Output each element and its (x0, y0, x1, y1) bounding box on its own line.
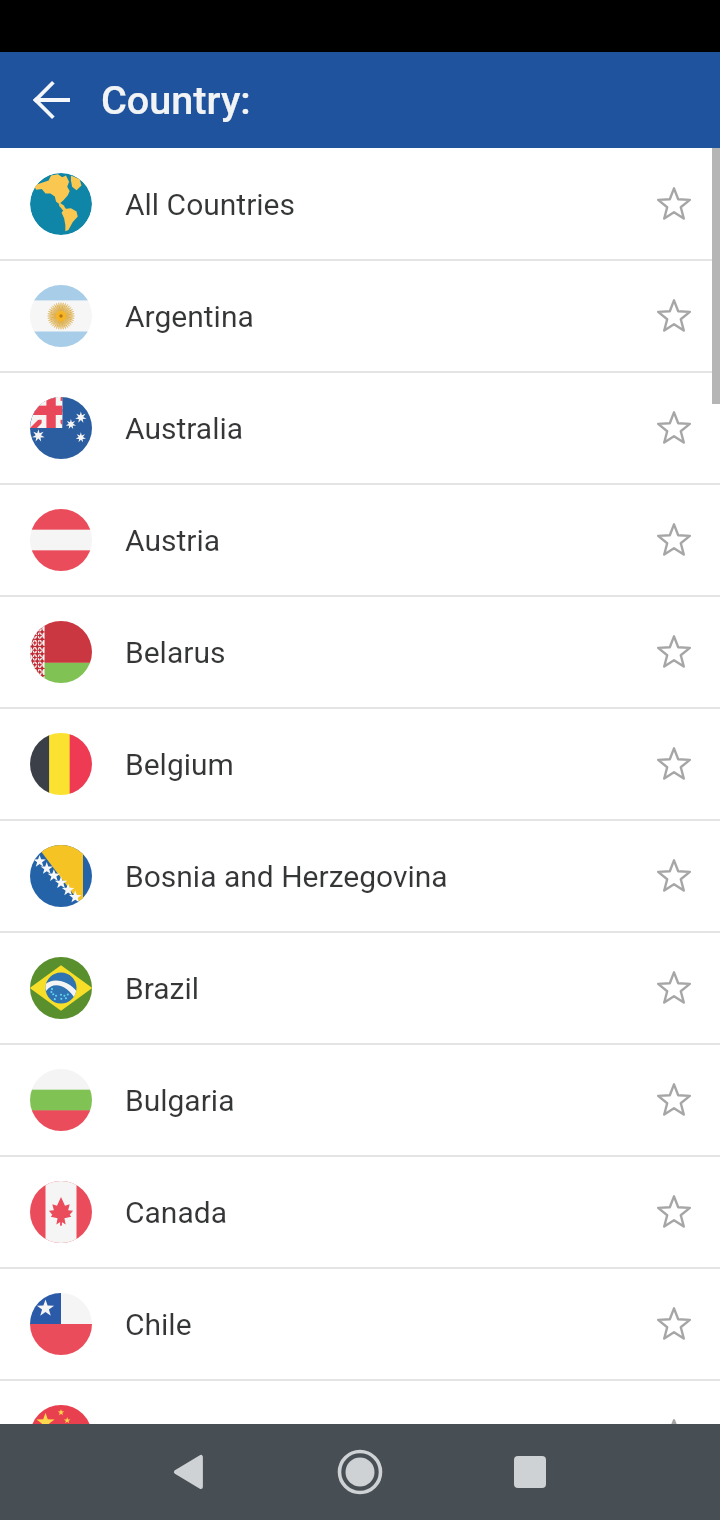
button[interactable]: Belgium (0, 709, 720, 821)
button[interactable]: Add Argentina to favourites (624, 268, 720, 364)
button[interactable]: Bulgaria (0, 1045, 720, 1157)
button[interactable]: Belarus (0, 597, 720, 709)
button[interactable]: China (0, 1381, 720, 1424)
button[interactable]: Add All Countries to favourites (624, 156, 720, 252)
button[interactable]: Brazil (0, 933, 720, 1045)
staticText: All Countries (125, 187, 624, 222)
button[interactable]: Australia (0, 373, 720, 485)
staticText: Bulgaria (125, 1083, 624, 1118)
button[interactable]: Argentina (0, 261, 720, 373)
button[interactable]: Add Austria to favourites (624, 492, 720, 588)
button[interactable]: Add Bosnia and Herzegovina to favourites (624, 828, 720, 924)
staticText: Australia (125, 411, 624, 446)
button[interactable]: Canada (0, 1157, 720, 1269)
button[interactable]: Add China to favourites (624, 1388, 720, 1424)
button[interactable]: Add Belgium to favourites (624, 716, 720, 812)
button[interactable]: Home (275, 1424, 445, 1520)
button[interactable]: Add Chile to favourites (624, 1276, 720, 1372)
button[interactable]: Add Canada to favourites (624, 1164, 720, 1260)
button[interactable]: All Countries (0, 149, 720, 261)
staticText: Argentina (125, 299, 624, 334)
staticText: Bosnia and Herzegovina (125, 859, 624, 894)
button[interactable]: Add Belarus to favourites (624, 604, 720, 700)
button[interactable]: Chile (0, 1269, 720, 1381)
button[interactable]: Add Brazil to favourites (624, 940, 720, 1036)
staticText: Brazil (125, 971, 624, 1006)
staticText: Chile (125, 1307, 624, 1342)
button[interactable]: Add Australia to favourites (624, 380, 720, 476)
button[interactable]: Recent apps (445, 1424, 615, 1520)
button[interactable]: Back (4, 52, 100, 148)
staticText: Belarus (125, 635, 624, 670)
staticText: Austria (125, 523, 624, 558)
staticText: Country: (101, 77, 251, 123)
staticText: Canada (125, 1195, 624, 1230)
button[interactable]: Bosnia and Herzegovina (0, 821, 720, 933)
button[interactable]: Austria (0, 485, 720, 597)
button[interactable]: Add Bulgaria to favourites (624, 1052, 720, 1148)
staticText: Belgium (125, 747, 624, 782)
button[interactable]: Back (105, 1424, 275, 1520)
